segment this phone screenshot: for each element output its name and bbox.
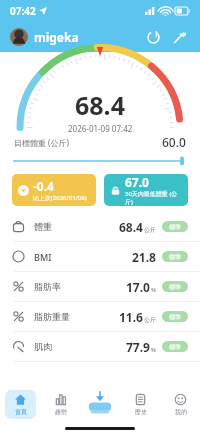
staticText: 標準 bbox=[169, 313, 181, 321]
button[interactable]: 脂肪率 bbox=[0, 272, 200, 301]
staticText: 67.0 bbox=[125, 174, 149, 190]
staticText: 我的 bbox=[175, 408, 187, 416]
staticText: 11.6 bbox=[119, 309, 143, 325]
button[interactable]: Measure bbox=[80, 390, 120, 418]
button[interactable]: 肌肉 bbox=[0, 332, 200, 361]
button[interactable]: 首頁 bbox=[0, 385, 40, 423]
button[interactable]: -0.4 bbox=[12, 174, 96, 206]
button[interactable] bbox=[14, 156, 186, 166]
staticText: 比上次(2026/01/08) bbox=[33, 194, 87, 202]
staticText: 脂肪率 bbox=[34, 281, 61, 292]
staticText: 公斤 bbox=[144, 316, 156, 324]
staticText: 標準 bbox=[169, 223, 181, 231]
button[interactable]: 我的 bbox=[160, 385, 200, 423]
button[interactable]: 目標體重 (公斤) bbox=[14, 134, 186, 150]
staticText: migeka bbox=[34, 29, 79, 45]
staticText: 肌肉 bbox=[34, 341, 52, 352]
staticText: 標準 bbox=[169, 283, 181, 291]
staticText: 77.9 bbox=[126, 339, 150, 355]
staticText: 標準 bbox=[169, 253, 181, 261]
staticText: 07:42 bbox=[10, 4, 36, 18]
staticText: 公斤 bbox=[144, 226, 156, 234]
staticText: % bbox=[151, 346, 156, 354]
button[interactable]: Edit bbox=[168, 26, 190, 48]
button[interactable]: 脂肪重量 bbox=[0, 302, 200, 331]
staticText: -0.4 bbox=[33, 178, 54, 194]
staticText: BMI bbox=[34, 251, 52, 263]
staticText: 60.0 bbox=[162, 134, 186, 150]
staticText: 趨勢 bbox=[55, 408, 67, 416]
staticText: 體重 bbox=[34, 221, 52, 232]
button[interactable]: Sync bbox=[142, 26, 164, 48]
staticText: 21.8 bbox=[132, 249, 156, 265]
staticText: 17.0 bbox=[126, 279, 150, 295]
button[interactable]: 歷史 bbox=[120, 385, 160, 423]
staticText: 標準 bbox=[169, 343, 181, 351]
button[interactable]: 體重 bbox=[0, 212, 200, 241]
staticText: 首頁 bbox=[15, 408, 27, 416]
staticText: 2026-01-09 07:42 bbox=[68, 123, 133, 134]
button[interactable]: BMI bbox=[0, 242, 200, 271]
staticText: 30天內最低體重 (公斤) bbox=[125, 190, 182, 206]
button[interactable]: 67.0 bbox=[104, 174, 188, 206]
button[interactable]: 趨勢 bbox=[40, 385, 80, 423]
staticText: 脂肪重量 bbox=[34, 311, 70, 322]
staticText: % bbox=[151, 286, 156, 294]
staticText: 68.4 bbox=[119, 219, 143, 235]
staticText: 68.4 bbox=[75, 88, 125, 122]
staticText: 歷史 bbox=[135, 408, 147, 416]
staticText: 目標體重 (公斤) bbox=[14, 137, 69, 148]
